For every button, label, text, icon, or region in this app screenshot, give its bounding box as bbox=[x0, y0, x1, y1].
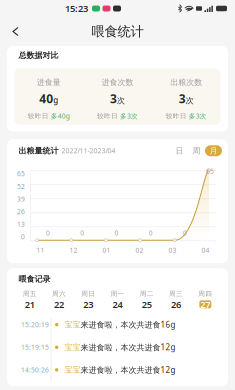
staticText: 39 bbox=[17, 194, 25, 203]
staticText: 11 bbox=[36, 246, 44, 255]
staticText: 喂食记录 bbox=[18, 274, 50, 284]
staticText: 26 bbox=[171, 298, 181, 310]
staticText: 周五 bbox=[23, 290, 37, 298]
staticText: 周 bbox=[192, 146, 200, 156]
staticText: 进食次数 bbox=[101, 77, 133, 87]
staticText: 14:50:26 bbox=[21, 365, 49, 374]
staticText: 0 bbox=[21, 232, 25, 241]
staticText: 3 bbox=[110, 91, 117, 107]
staticText: 出粮量统计 bbox=[18, 146, 58, 156]
staticText: 进食量 bbox=[37, 77, 61, 87]
staticText: 出粮次数 bbox=[170, 77, 202, 87]
staticText: 0 bbox=[46, 228, 50, 237]
staticText: 0 bbox=[149, 228, 153, 237]
button[interactable]: 周六 bbox=[44, 290, 74, 308]
button[interactable]: 周日 bbox=[74, 290, 103, 308]
staticText: 周日 bbox=[81, 290, 95, 298]
button[interactable]: 日 bbox=[171, 145, 188, 156]
staticText: 12 bbox=[69, 246, 77, 255]
staticText: 24 bbox=[112, 298, 122, 310]
button[interactable]: 周五 bbox=[15, 290, 44, 308]
staticText: 25 bbox=[142, 298, 152, 310]
staticText: 来进食啦，本次共进食16g bbox=[80, 319, 175, 330]
staticText: 0 bbox=[80, 228, 84, 237]
staticText: 02 bbox=[135, 246, 143, 255]
staticText: 15:23 bbox=[65, 2, 88, 15]
staticText: 宝宝 bbox=[64, 365, 80, 375]
staticText: 23 bbox=[83, 298, 93, 310]
staticText: 15:19:15 bbox=[21, 343, 49, 352]
staticText: 13 bbox=[17, 220, 25, 229]
button[interactable]: 周 bbox=[188, 145, 205, 156]
staticText: 2022/11-2023/04 bbox=[61, 146, 115, 155]
staticText: 15:20:19 bbox=[21, 320, 49, 329]
staticText: 周三 bbox=[169, 290, 183, 298]
staticText: 21 bbox=[25, 298, 35, 310]
staticText: 次 bbox=[117, 96, 125, 105]
staticText: 03 bbox=[168, 246, 176, 255]
staticText: 01 bbox=[102, 246, 110, 255]
button[interactable]: 周一 bbox=[103, 290, 132, 308]
staticText: g bbox=[53, 95, 58, 105]
staticText: 较昨日 bbox=[97, 112, 118, 120]
staticText: 月 bbox=[209, 146, 217, 156]
button[interactable]: 周四 bbox=[191, 290, 220, 308]
button[interactable]: 返回 bbox=[5, 22, 24, 41]
staticText: 04 bbox=[201, 246, 209, 255]
staticText: 65 bbox=[206, 167, 214, 176]
staticText: 来进食啦，本次共进食12g bbox=[80, 342, 175, 352]
staticText: 52 bbox=[17, 182, 25, 191]
staticText: 较昨日 bbox=[28, 112, 49, 120]
staticText: 40 bbox=[39, 91, 53, 107]
staticText: 喂食统计 bbox=[91, 23, 143, 40]
staticText: 次 bbox=[186, 96, 194, 105]
staticText: 0 bbox=[183, 228, 187, 237]
button[interactable]: 月 bbox=[205, 145, 222, 156]
staticText: 26 bbox=[17, 207, 25, 216]
staticText: 22 bbox=[54, 298, 64, 310]
staticText: 0 bbox=[114, 228, 118, 237]
staticText: 3 bbox=[179, 91, 186, 107]
button[interactable]: 周二 bbox=[132, 290, 161, 308]
staticText: 65 bbox=[17, 169, 25, 178]
staticText: 来进食啦，本次共进食12g bbox=[80, 365, 175, 375]
staticText: 周六 bbox=[52, 290, 66, 298]
staticText: 日 bbox=[175, 146, 183, 156]
staticText: 多3次 bbox=[189, 112, 207, 120]
staticText: 宝宝 bbox=[64, 342, 80, 352]
staticText: 总数据对比 bbox=[18, 50, 58, 60]
staticText: 27 bbox=[200, 298, 210, 310]
staticText: 宝宝 bbox=[64, 320, 80, 329]
staticText: 周二 bbox=[140, 290, 154, 298]
staticText: 较昨日 bbox=[166, 112, 187, 120]
staticText: 多40g bbox=[51, 112, 70, 120]
staticText: 多3次 bbox=[120, 112, 138, 120]
button[interactable]: 周三 bbox=[161, 290, 191, 308]
staticText: 周四 bbox=[198, 290, 212, 298]
staticText: 周一 bbox=[110, 290, 124, 298]
